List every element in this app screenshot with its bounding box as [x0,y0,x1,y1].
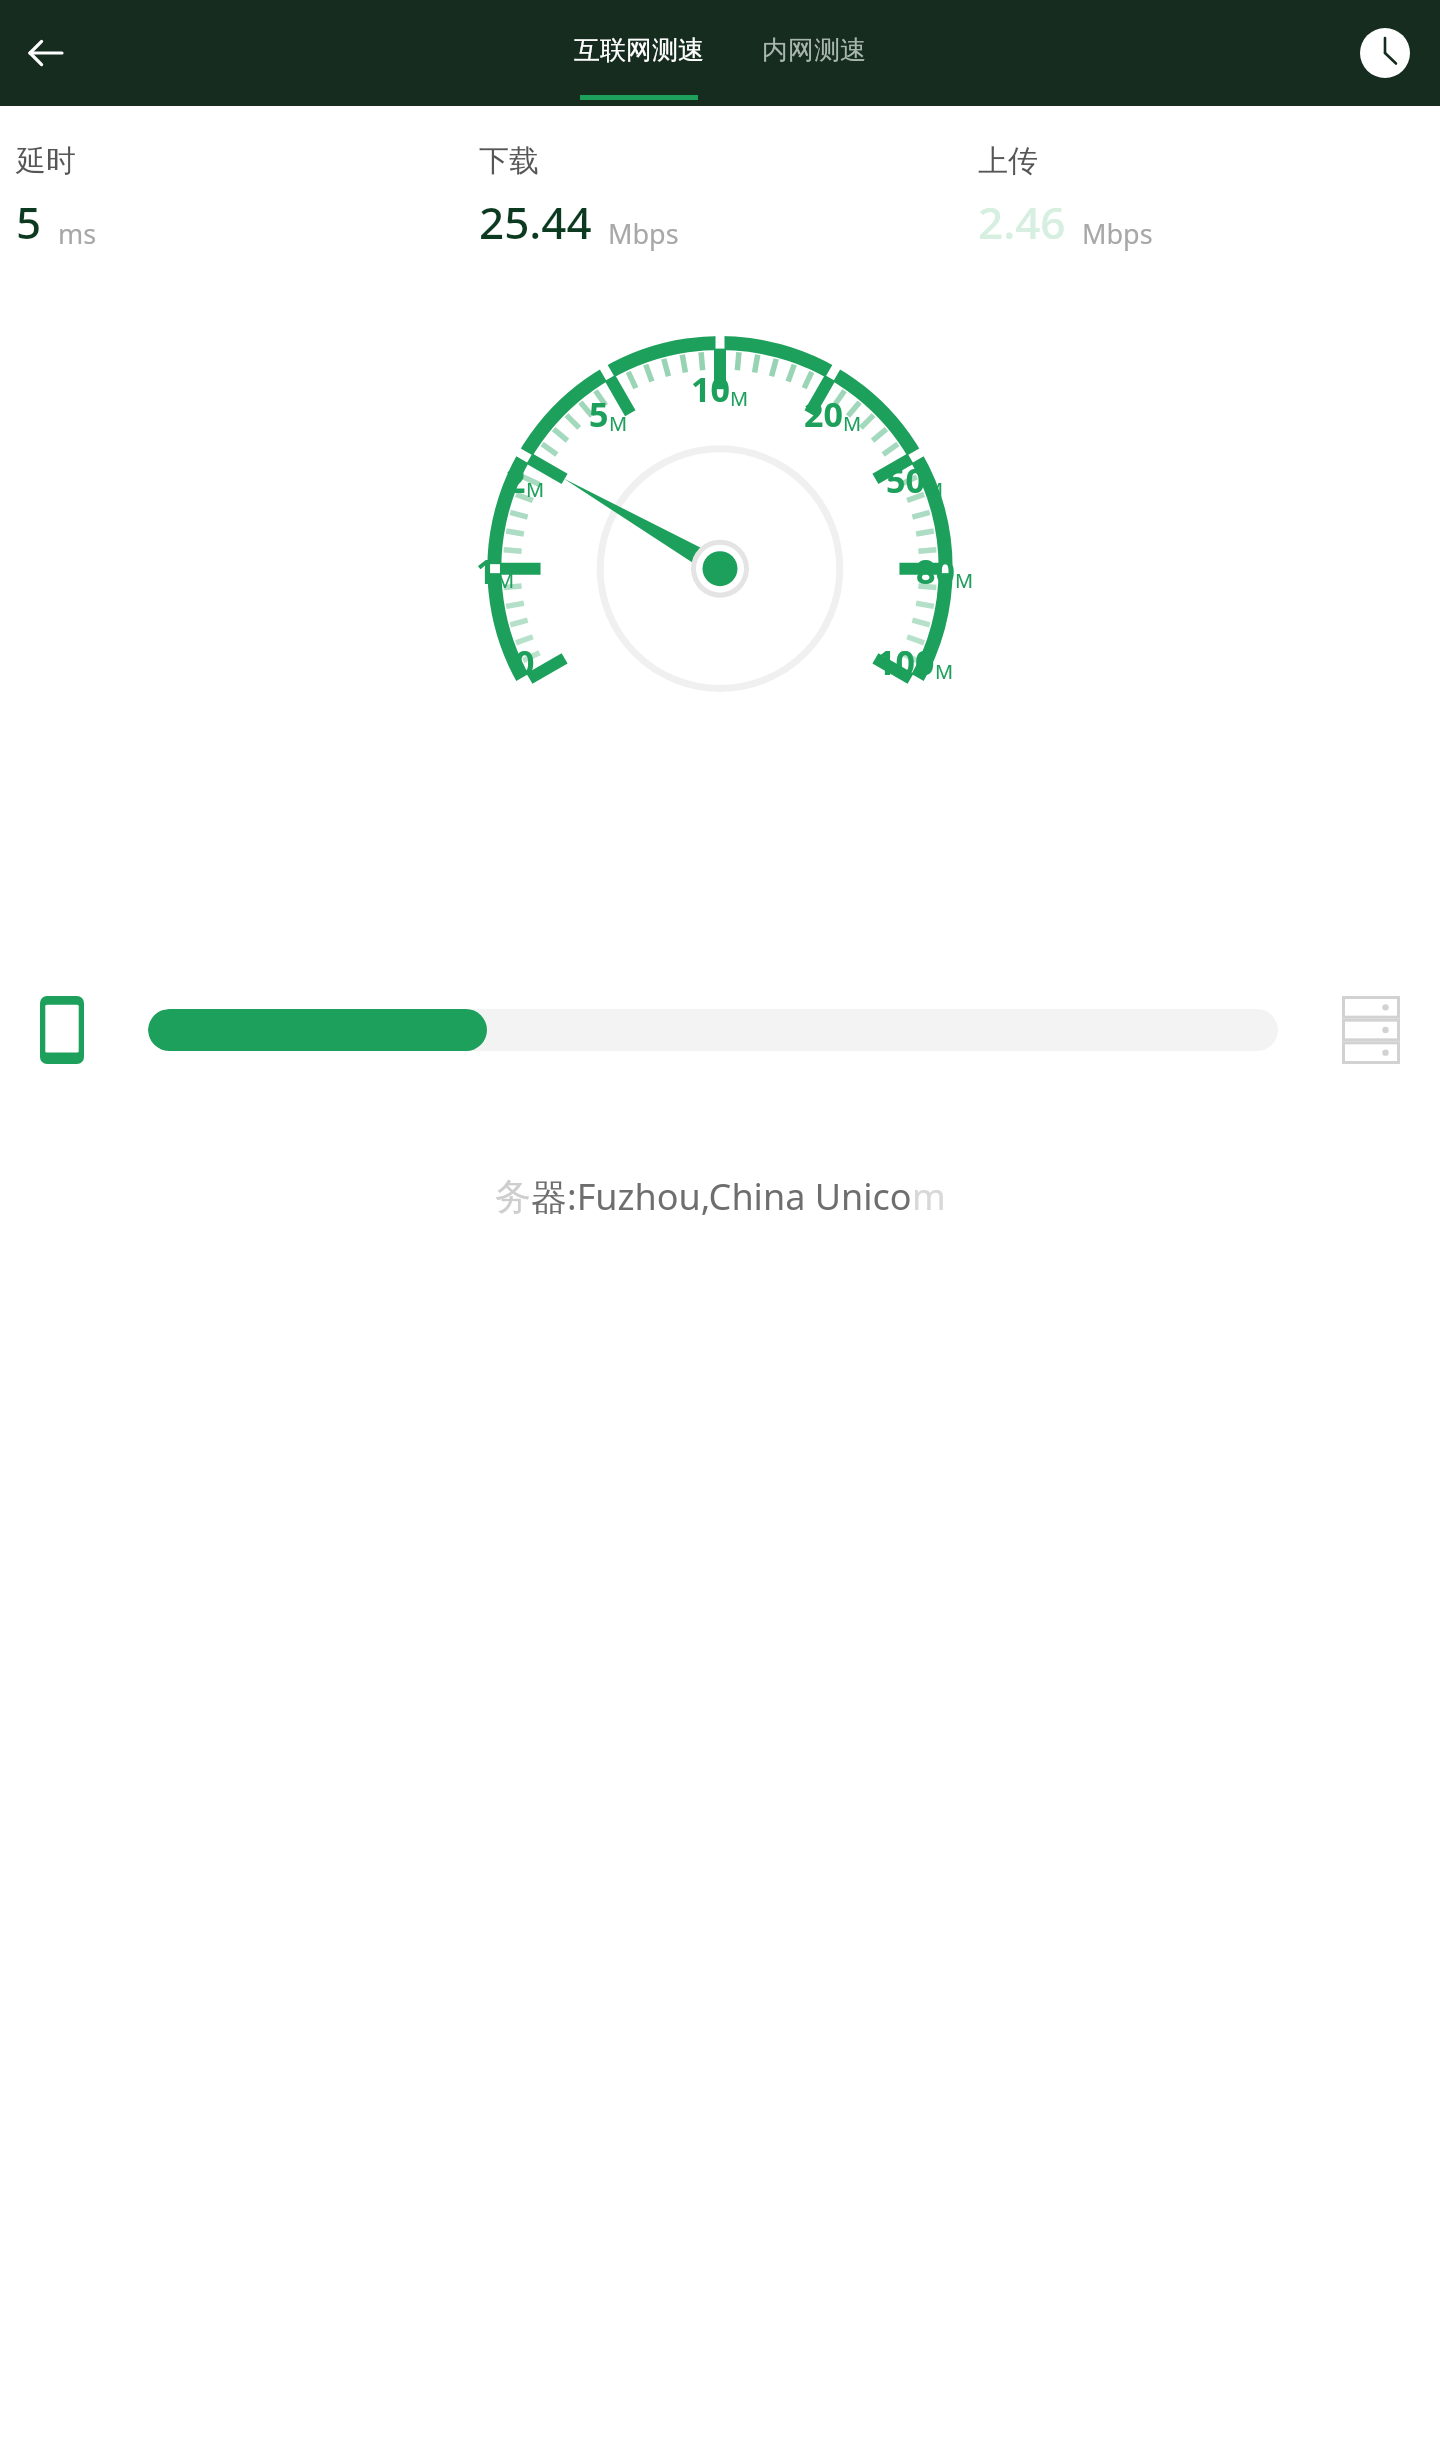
staticText: 20 [804,391,843,437]
staticText: M [526,476,545,503]
staticText: 100 [876,639,935,685]
button[interactable]: History [1356,24,1414,82]
staticText: 下载 [479,142,539,180]
button[interactable]: 内网测速 [746,6,882,100]
staticText: 互联网测速 [574,34,704,67]
staticText: 50 [886,457,925,503]
button[interactable]: 互联网测速 [558,6,720,100]
staticText: 上传 [978,142,1038,180]
staticText: 10 [691,366,730,412]
staticText: 务 [495,1174,531,1219]
staticText: M [935,658,954,685]
staticText: Mbps [1082,215,1153,252]
staticText: M [925,476,944,503]
staticText: 2 [506,457,526,503]
staticText: 延时 [16,142,76,180]
staticText: M [843,410,862,437]
staticText: 5 [589,391,609,437]
staticText: M [496,567,515,594]
staticText: 1 [476,548,496,594]
staticText: M [730,385,749,412]
staticText: 25.44 [479,192,592,252]
staticText: ms [58,215,97,252]
staticText: 5 [16,192,42,252]
staticText: 0 [515,639,535,685]
staticText: 器:Fuzhou,China Unico [531,1172,912,1221]
staticText: 80 [916,548,955,594]
staticText: M [955,567,974,594]
staticText: M [609,410,628,437]
staticText: m [912,1172,946,1221]
staticText: 内网测速 [762,34,866,67]
staticText: 2.46 [978,192,1066,252]
staticText: Mbps [608,215,679,252]
button[interactable]: Back [12,20,78,86]
